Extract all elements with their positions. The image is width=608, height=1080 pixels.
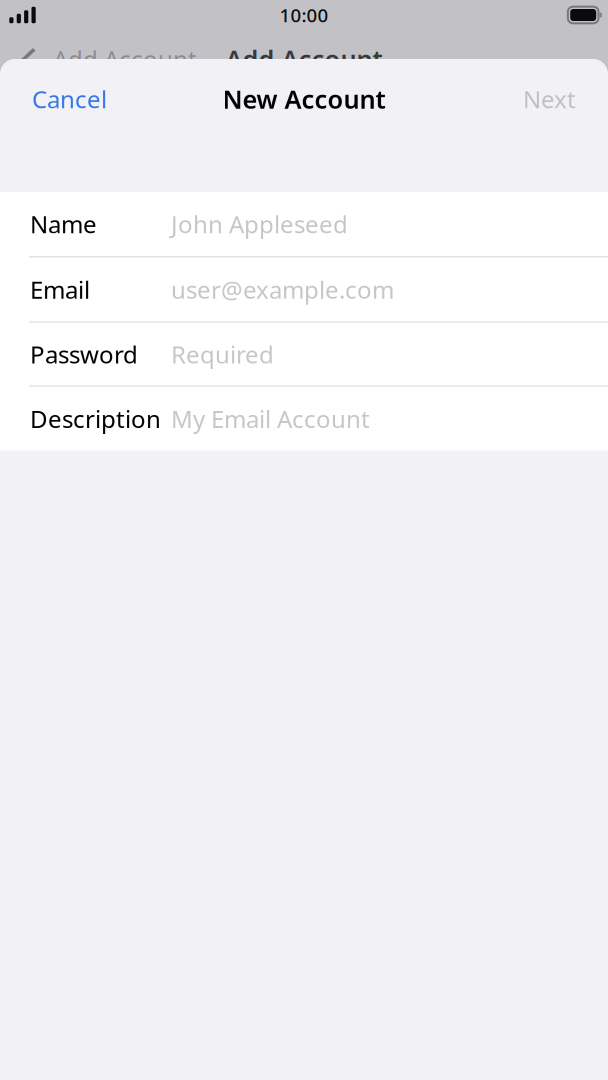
button[interactable]: Password bbox=[0, 323, 608, 385]
staticText: Email bbox=[30, 273, 90, 306]
staticText: My Email Account bbox=[171, 402, 370, 435]
button[interactable]: Email bbox=[0, 257, 608, 321]
staticText: Password bbox=[30, 338, 138, 370]
staticText: Add Account bbox=[225, 42, 382, 76]
staticText: Cancel bbox=[32, 83, 107, 115]
button[interactable]: Cancel bbox=[16, 70, 123, 128]
staticText: John Appleseed bbox=[171, 208, 348, 240]
staticText: user@example.com bbox=[171, 273, 394, 306]
button[interactable]: Next bbox=[507, 70, 592, 128]
staticText: Add Account bbox=[53, 43, 197, 75]
staticText: Description bbox=[30, 402, 161, 435]
staticText: Next bbox=[523, 83, 576, 115]
button[interactable]: Description bbox=[0, 387, 608, 450]
staticText: 10:00 bbox=[279, 2, 328, 28]
staticText: Name bbox=[30, 208, 97, 240]
button[interactable]: Name bbox=[0, 192, 608, 256]
staticText: New Account bbox=[222, 82, 385, 116]
button[interactable]: Back to Add Account bbox=[0, 30, 205, 88]
staticText: Required bbox=[171, 338, 274, 370]
